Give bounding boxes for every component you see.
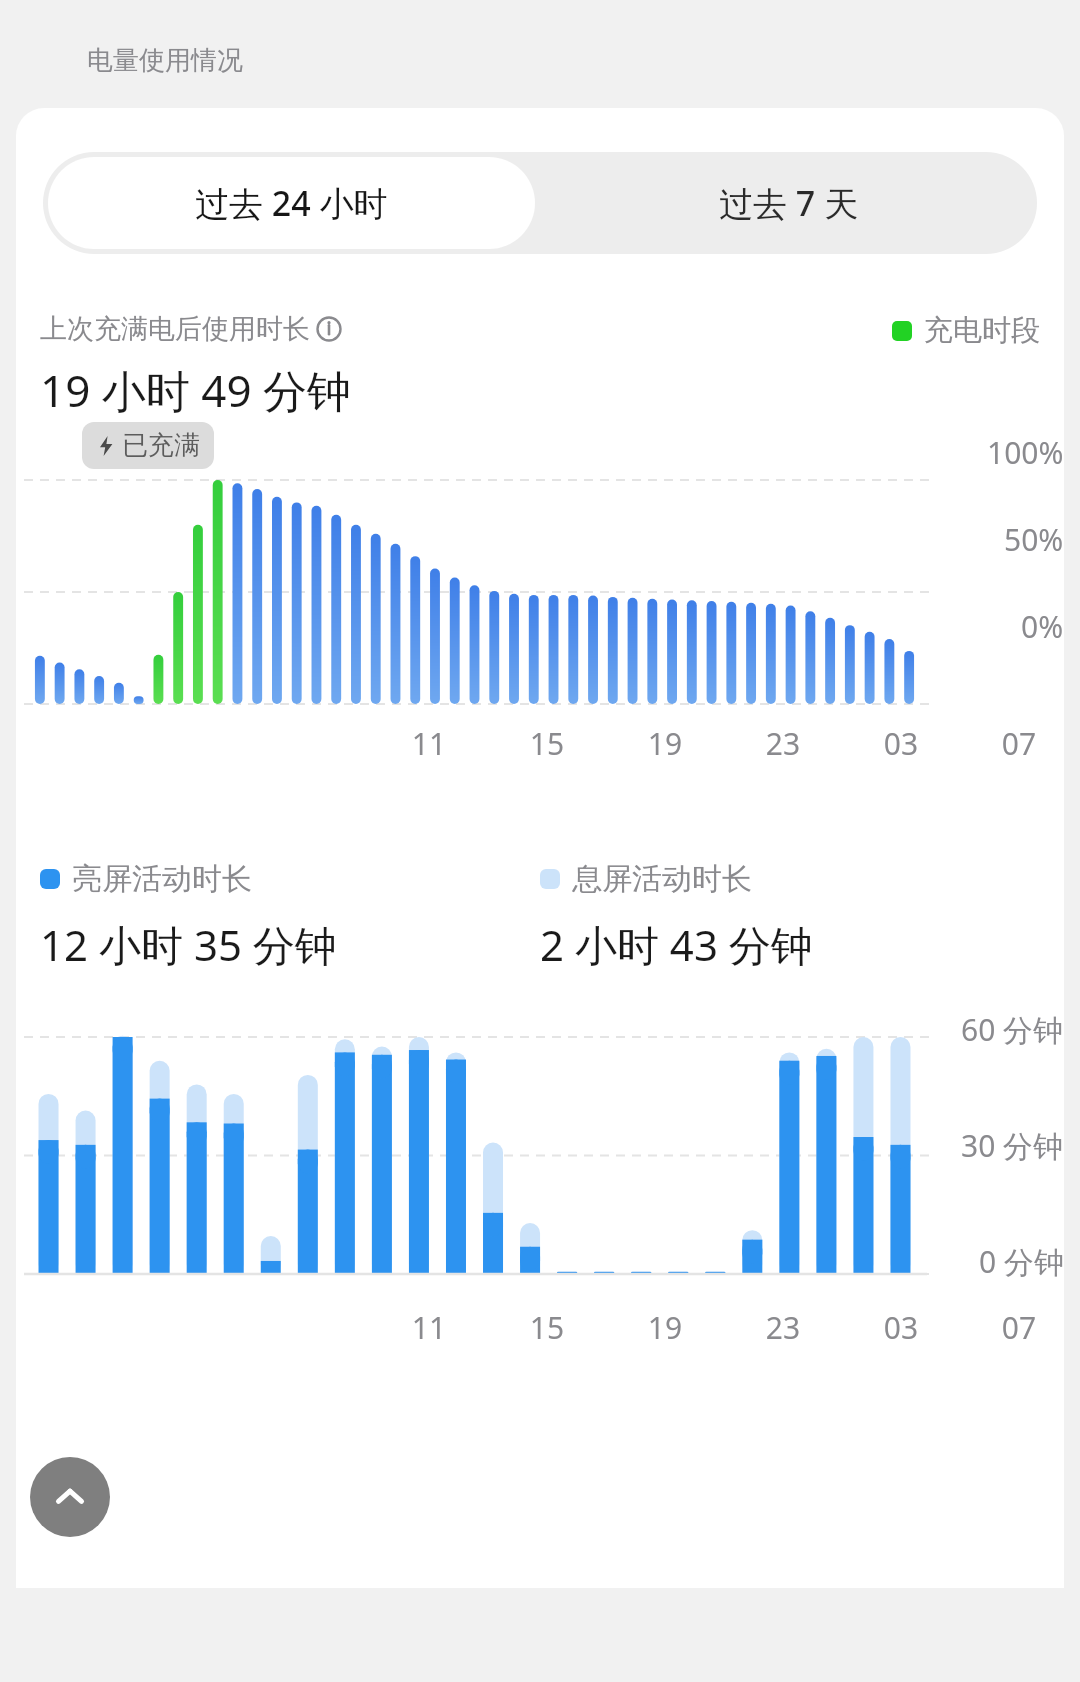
- staticText: 已充满: [122, 429, 200, 462]
- staticText: 电量使用情况: [87, 44, 243, 77]
- staticText: 现在: [672, 723, 1064, 761]
- staticText: 07: [554, 1307, 1064, 1348]
- staticText: 03: [436, 723, 1064, 764]
- staticText: 100%: [987, 432, 1064, 473]
- staticText: 上次充满电后使用时长: [40, 312, 310, 346]
- button[interactable]: Scroll up: [30, 1457, 110, 1537]
- staticText: 2 小时 43 分钟: [540, 916, 813, 973]
- staticText: 亮屏活动时长: [72, 860, 252, 898]
- staticText: 过去 7 天: [719, 180, 859, 226]
- staticText: 30 分钟: [961, 1125, 1064, 1166]
- staticText: 50%: [1004, 519, 1064, 560]
- staticText: 19: [200, 1307, 1064, 1348]
- staticText: 23: [318, 1307, 1064, 1348]
- staticText: 07: [554, 723, 1064, 764]
- staticText: 息屏活动时长: [572, 860, 752, 898]
- staticText: 15: [82, 723, 1012, 764]
- staticText: 0%: [1021, 606, 1064, 647]
- staticText: 现在: [672, 1307, 1064, 1345]
- staticText: 19 小时 49 分钟: [40, 360, 351, 420]
- staticText: 03: [436, 1307, 1064, 1348]
- staticText: 60 分钟: [961, 1009, 1064, 1050]
- staticText: 11: [16, 1307, 894, 1348]
- button[interactable]: 过去 7 天: [540, 152, 1037, 254]
- staticText: 23: [318, 723, 1064, 764]
- staticText: 19: [200, 723, 1064, 764]
- staticText: 充电时段: [924, 312, 1040, 349]
- staticText: 15: [82, 1307, 1012, 1348]
- staticText: 0 分钟: [979, 1241, 1064, 1282]
- staticText: 12 小时 35 分钟: [40, 916, 337, 973]
- staticText: 过去 24 小时: [195, 180, 388, 226]
- button[interactable]: 过去 24 小时: [48, 157, 535, 249]
- staticText: 11: [16, 723, 894, 764]
